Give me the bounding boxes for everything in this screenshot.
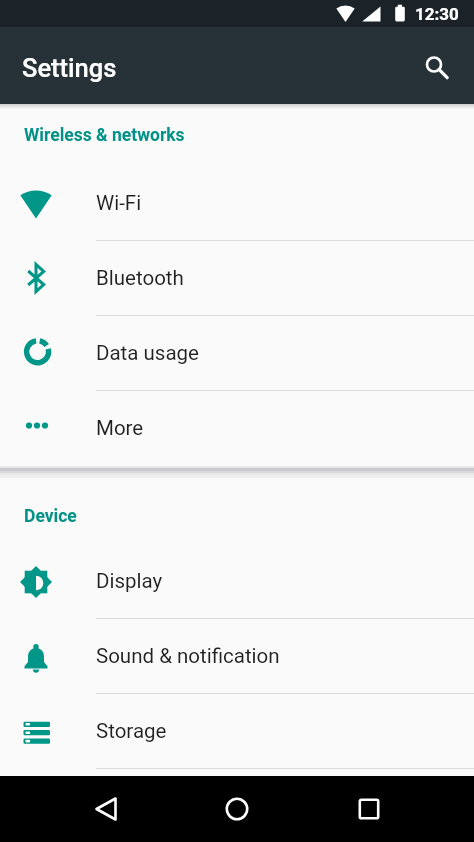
button[interactable]: [213, 776, 261, 842]
staticText: Display: [96, 569, 163, 593]
button[interactable]: [82, 776, 130, 842]
staticText: Sound & notification: [96, 644, 280, 668]
staticText: Bluetooth: [96, 266, 184, 290]
staticText: Settings: [22, 53, 117, 83]
staticText: Device: [24, 506, 77, 527]
staticText: Wireless & networks: [24, 125, 185, 146]
staticText: More: [96, 416, 144, 440]
staticText: Storage: [96, 719, 167, 743]
button[interactable]: Wi-Fi: [0, 166, 474, 240]
staticText: Wi-Fi: [96, 191, 142, 215]
button[interactable]: [414, 42, 462, 90]
button[interactable]: Data usage: [0, 316, 474, 390]
staticText: Data usage: [96, 341, 199, 365]
button[interactable]: Display: [0, 544, 474, 618]
button[interactable]: Storage: [0, 694, 474, 768]
button[interactable]: [345, 776, 393, 842]
button[interactable]: More: [0, 391, 474, 465]
button[interactable]: Sound & notification: [0, 619, 474, 693]
button[interactable]: Bluetooth: [0, 241, 474, 315]
staticText: 12:30: [415, 4, 459, 24]
